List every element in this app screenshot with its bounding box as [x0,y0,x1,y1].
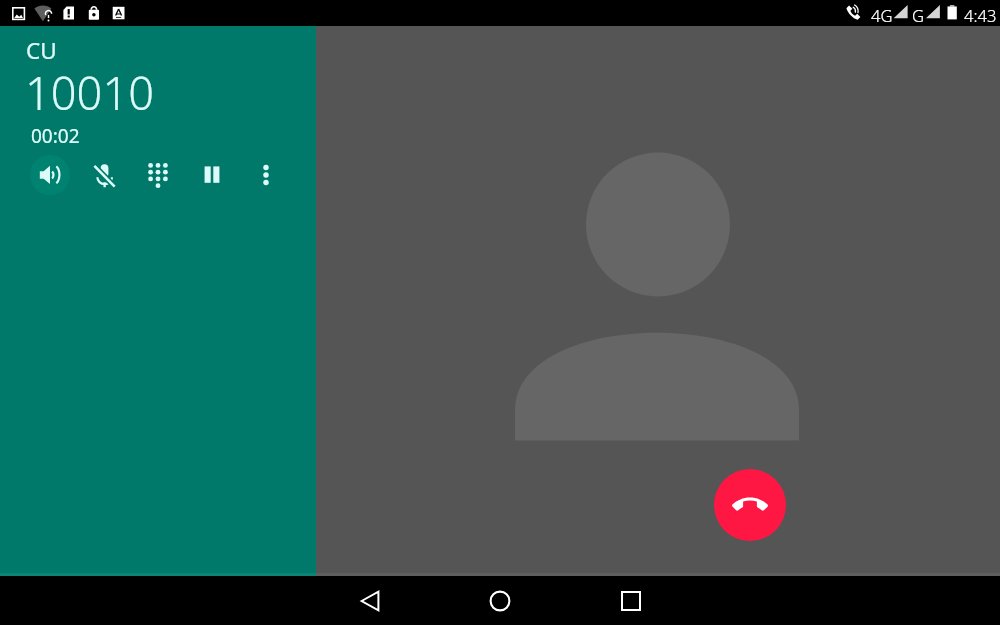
staticText: 4:43 [964,4,997,27]
staticText: 4G [871,4,893,27]
staticText: G [912,4,925,27]
button[interactable]: Recents [607,576,655,625]
button[interactable]: Hold [192,155,232,195]
staticText: CU [26,35,57,66]
staticText: 10010 [25,62,155,124]
button[interactable]: More options [246,155,286,195]
button[interactable]: Dialpad [138,155,178,195]
button[interactable]: Home [476,576,524,625]
button[interactable]: Speaker [30,155,70,195]
button[interactable]: Back [347,576,395,625]
button[interactable]: Mute [84,155,124,195]
staticText: 00:02 [31,123,80,149]
button[interactable]: End call [714,469,786,541]
